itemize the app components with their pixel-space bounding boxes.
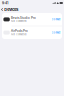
button[interactable]: AirPods Pro <box>2 26 62 39</box>
staticText: 9:41 <box>2 1 8 5</box>
staticText: Connect <box>52 31 61 34</box>
staticText: Devices <box>4 7 18 12</box>
staticText: Beats Studio Pro <box>11 16 36 20</box>
button[interactable]: Beats Studio Pro <box>2 13 62 26</box>
button[interactable]: Devices <box>4 7 18 12</box>
staticText: Not Connected <box>11 20 26 23</box>
button[interactable]: Back <box>1 8 3 11</box>
staticText: AirPods Pro <box>11 29 28 33</box>
staticText: Connect <box>52 18 61 21</box>
staticText: Not Connected <box>11 33 26 36</box>
